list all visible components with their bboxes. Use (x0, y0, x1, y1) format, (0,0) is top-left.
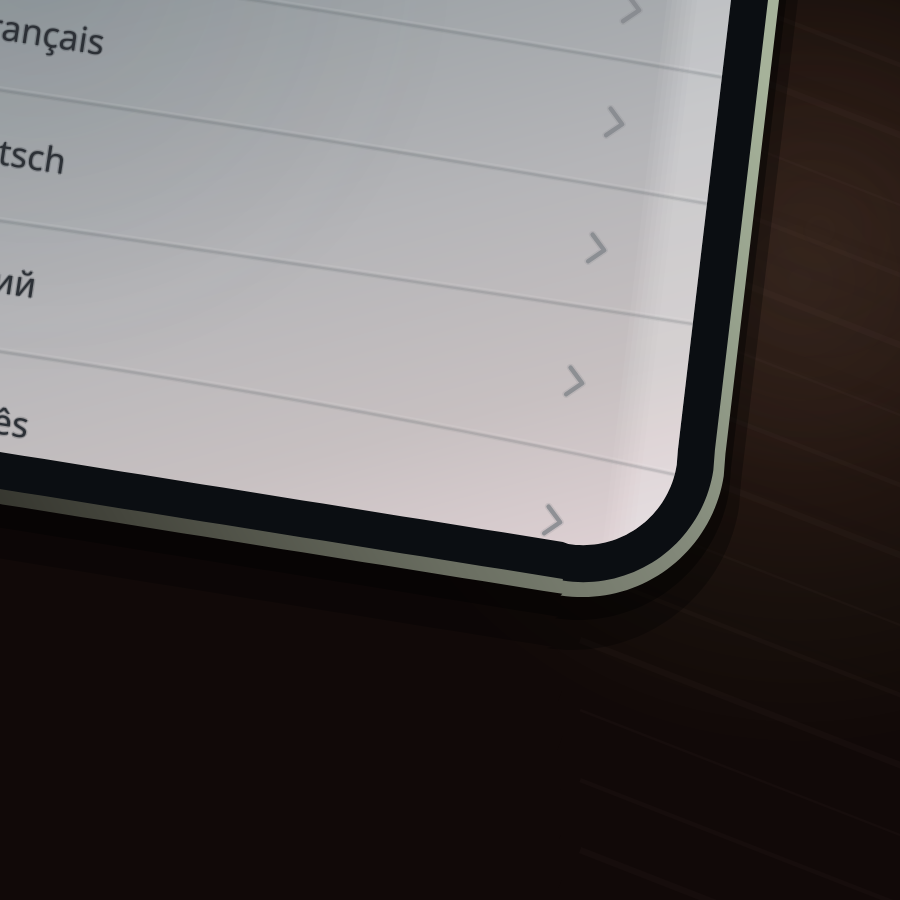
button[interactable]: Language settings list (0, 0, 900, 900)
